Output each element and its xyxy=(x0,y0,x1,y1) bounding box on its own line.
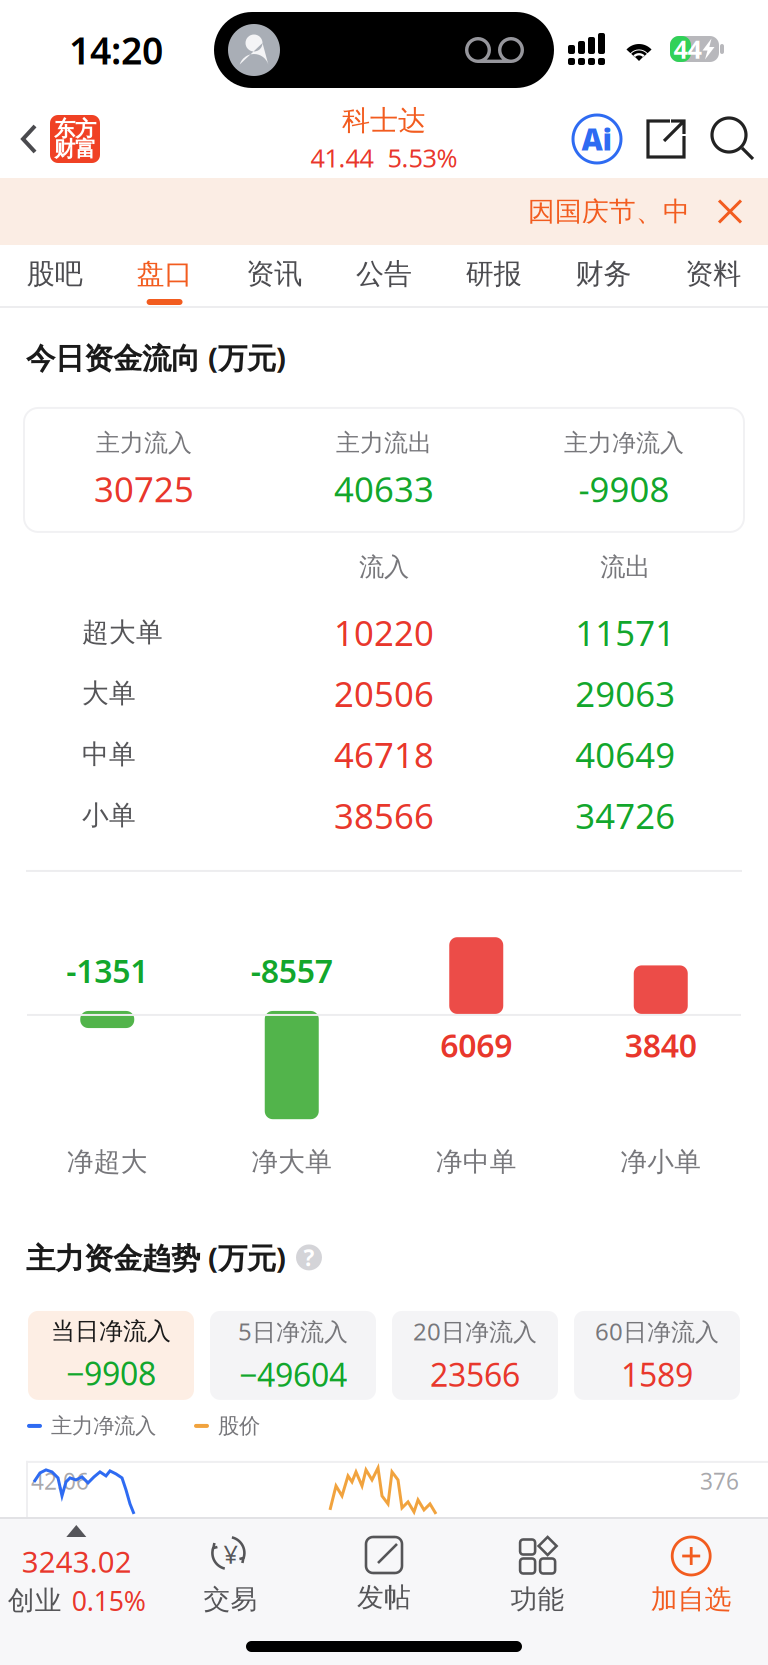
staticText: 38566 xyxy=(334,792,434,838)
staticText: 股吧 xyxy=(27,257,83,291)
staticText: 44 xyxy=(673,32,701,66)
staticText: 3243.02 xyxy=(22,1542,132,1581)
staticText: 加自选 xyxy=(651,1583,732,1616)
staticText: 当日净流入 xyxy=(51,1316,171,1346)
staticText: 科士达 xyxy=(342,103,426,138)
staticText: 42.06 xyxy=(31,1466,89,1496)
staticText: −49604 xyxy=(239,1353,347,1396)
button[interactable]: 资料 xyxy=(658,245,768,306)
staticText: 东方 xyxy=(54,116,96,142)
staticText: 财务 xyxy=(575,257,631,291)
button[interactable]: 关闭公告 xyxy=(714,195,746,227)
staticText: 今日资金流向 (万元) xyxy=(26,338,286,377)
staticText: 功能 xyxy=(511,1583,565,1616)
staticText: 因国庆节、中 xyxy=(528,195,690,228)
staticText: -9908 xyxy=(578,466,669,512)
staticText: 1589 xyxy=(621,1353,693,1396)
staticText: 主力净流入 xyxy=(564,428,684,458)
staticText: 14:20 xyxy=(69,25,163,75)
staticText: 净小单 xyxy=(620,1146,701,1178)
staticText: 11571 xyxy=(575,609,675,655)
staticText: 流出 xyxy=(600,551,650,582)
staticText: 30725 xyxy=(94,466,194,512)
staticText: 46718 xyxy=(334,731,434,777)
staticText: 主力资金趋势 (万元) xyxy=(26,1238,286,1277)
staticText: 资料 xyxy=(685,257,741,291)
staticText: 盘口 xyxy=(137,257,193,291)
staticText: 研报 xyxy=(466,257,522,291)
staticText: 34726 xyxy=(575,792,675,838)
button[interactable]: 返回 xyxy=(0,100,100,178)
staticText: 23566 xyxy=(430,1353,520,1396)
button[interactable]: 5日净流入 xyxy=(210,1311,376,1400)
button[interactable]: AI 助手 xyxy=(572,114,622,164)
button[interactable]: ¥ xyxy=(154,1519,307,1623)
staticText: 财富 xyxy=(54,136,96,162)
staticText: 29063 xyxy=(575,670,675,716)
staticText: 20506 xyxy=(334,670,434,716)
staticText: Ai xyxy=(581,119,612,158)
staticText: 主力净流入 xyxy=(51,1413,156,1439)
button[interactable]: 分享 xyxy=(644,117,688,161)
button[interactable]: 搜索 xyxy=(710,116,756,162)
button[interactable]: 财务 xyxy=(549,245,658,306)
staticText: 资讯 xyxy=(246,257,302,291)
staticText: 流入 xyxy=(359,551,409,582)
button[interactable]: 资讯 xyxy=(219,245,329,306)
staticText: ? xyxy=(303,1242,314,1272)
staticText: 发帖 xyxy=(357,1581,411,1614)
staticText: 净超大 xyxy=(67,1146,148,1178)
staticText: 20日净流入 xyxy=(413,1315,537,1347)
staticText: 净大单 xyxy=(251,1146,332,1178)
staticText: ¥ xyxy=(223,1537,237,1571)
staticText: 41.44 xyxy=(310,141,373,174)
button[interactable]: 20日净流入 xyxy=(392,1311,558,1400)
staticText: 376 xyxy=(700,1466,739,1496)
staticText: 40649 xyxy=(575,731,675,777)
staticText: 6069 xyxy=(440,1024,512,1066)
button[interactable]: 3243.02 xyxy=(0,1519,154,1623)
staticText: 中单 xyxy=(82,738,136,771)
staticText: 0.15% xyxy=(72,1583,146,1618)
staticText: 5.53% xyxy=(387,141,457,174)
button[interactable]: 盘口 xyxy=(110,245,219,306)
button[interactable]: 公告 xyxy=(329,245,439,306)
staticText: 大单 xyxy=(82,677,136,710)
button[interactable]: 加自选 xyxy=(614,1519,768,1623)
button[interactable]: 股吧 xyxy=(0,245,110,306)
staticText: 超大单 xyxy=(82,616,163,649)
button[interactable]: 发帖 xyxy=(307,1519,461,1623)
button[interactable]: 功能 xyxy=(461,1519,614,1623)
staticText: 公告 xyxy=(356,257,412,291)
staticText: 主力流入 xyxy=(96,428,192,458)
staticText: 5日净流入 xyxy=(238,1315,348,1347)
staticText: 股价 xyxy=(218,1413,260,1439)
staticText: 小单 xyxy=(82,799,136,832)
staticText: 10220 xyxy=(334,609,434,655)
button[interactable]: 60日净流入 xyxy=(574,1311,740,1400)
staticText: -8557 xyxy=(251,949,333,992)
staticText: 40633 xyxy=(334,466,434,512)
staticText: 创业 xyxy=(8,1584,62,1617)
staticText: 3840 xyxy=(625,1024,697,1066)
staticText: 60日净流入 xyxy=(595,1315,719,1347)
staticText: 净中单 xyxy=(436,1146,517,1178)
button[interactable]: 研报 xyxy=(439,245,549,306)
staticText: −9908 xyxy=(66,1352,156,1394)
staticText: 主力流出 xyxy=(336,428,432,458)
staticText: 交易 xyxy=(203,1583,257,1616)
staticText: -1351 xyxy=(66,949,148,992)
button[interactable]: 当日净流入 xyxy=(28,1311,194,1400)
